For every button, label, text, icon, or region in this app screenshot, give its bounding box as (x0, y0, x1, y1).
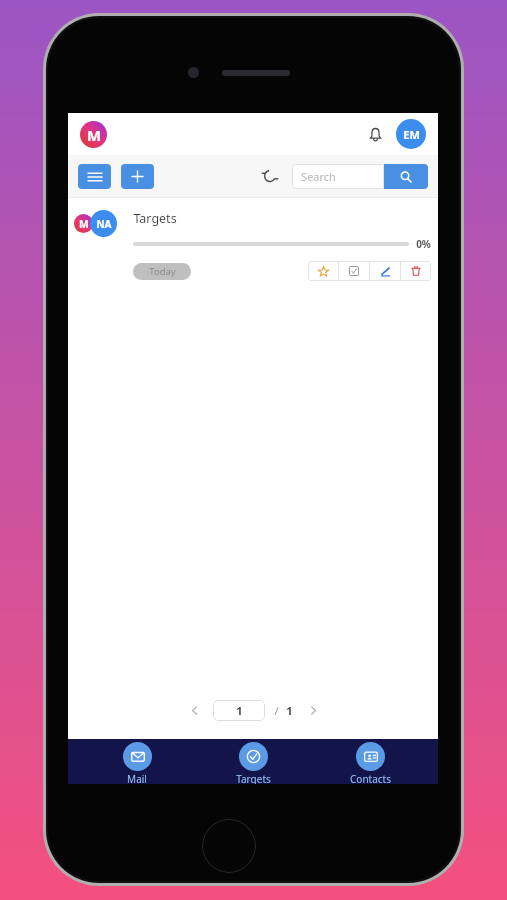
button[interactable]: Complete (339, 261, 369, 281)
staticText: M (87, 125, 101, 145)
button[interactable]: 1 (213, 700, 265, 721)
staticText: NA (96, 217, 112, 231)
button[interactable]: Next page (302, 699, 324, 721)
button[interactable]: Search (292, 164, 384, 189)
button[interactable]: Search (384, 164, 428, 189)
staticText: Today (149, 265, 176, 278)
button[interactable]: Targets (205, 739, 301, 784)
staticText: 1 (286, 703, 293, 718)
staticText: Mail (127, 772, 147, 784)
button[interactable]: M (80, 121, 107, 148)
button[interactable]: Edit (370, 261, 400, 281)
button[interactable]: Mail (89, 739, 185, 784)
button[interactable]: Add (121, 164, 154, 189)
staticText: Contacts (350, 772, 391, 784)
button[interactable]: Contacts (322, 739, 418, 784)
button[interactable]: EM (396, 119, 426, 149)
button[interactable]: Today (133, 263, 191, 280)
staticText: 0% (416, 237, 431, 251)
staticText: Targets (236, 772, 271, 784)
button[interactable]: Notifications (360, 119, 390, 149)
staticText: Targets (133, 210, 177, 227)
button[interactable]: M (68, 198, 438, 280)
staticText: 1 (236, 703, 243, 718)
staticText: M (79, 217, 89, 231)
button[interactable]: Refresh (257, 163, 283, 189)
staticText: Search (301, 169, 336, 184)
staticText: EM (403, 127, 420, 142)
staticText: / (274, 703, 279, 718)
button[interactable]: Delete (401, 261, 431, 281)
button[interactable]: Favorite (308, 261, 338, 281)
button[interactable]: Menu (78, 164, 111, 189)
button[interactable]: Previous page (183, 699, 205, 721)
